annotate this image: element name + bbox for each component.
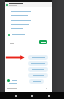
button[interactable] bbox=[5, 86, 52, 92]
button[interactable] bbox=[28, 73, 48, 78]
button[interactable] bbox=[29, 79, 44, 84]
button[interactable] bbox=[28, 67, 48, 72]
button[interactable] bbox=[28, 55, 48, 60]
button[interactable] bbox=[5, 2, 52, 7]
button[interactable] bbox=[28, 61, 48, 66]
button[interactable]: Submit bbox=[39, 40, 47, 44]
